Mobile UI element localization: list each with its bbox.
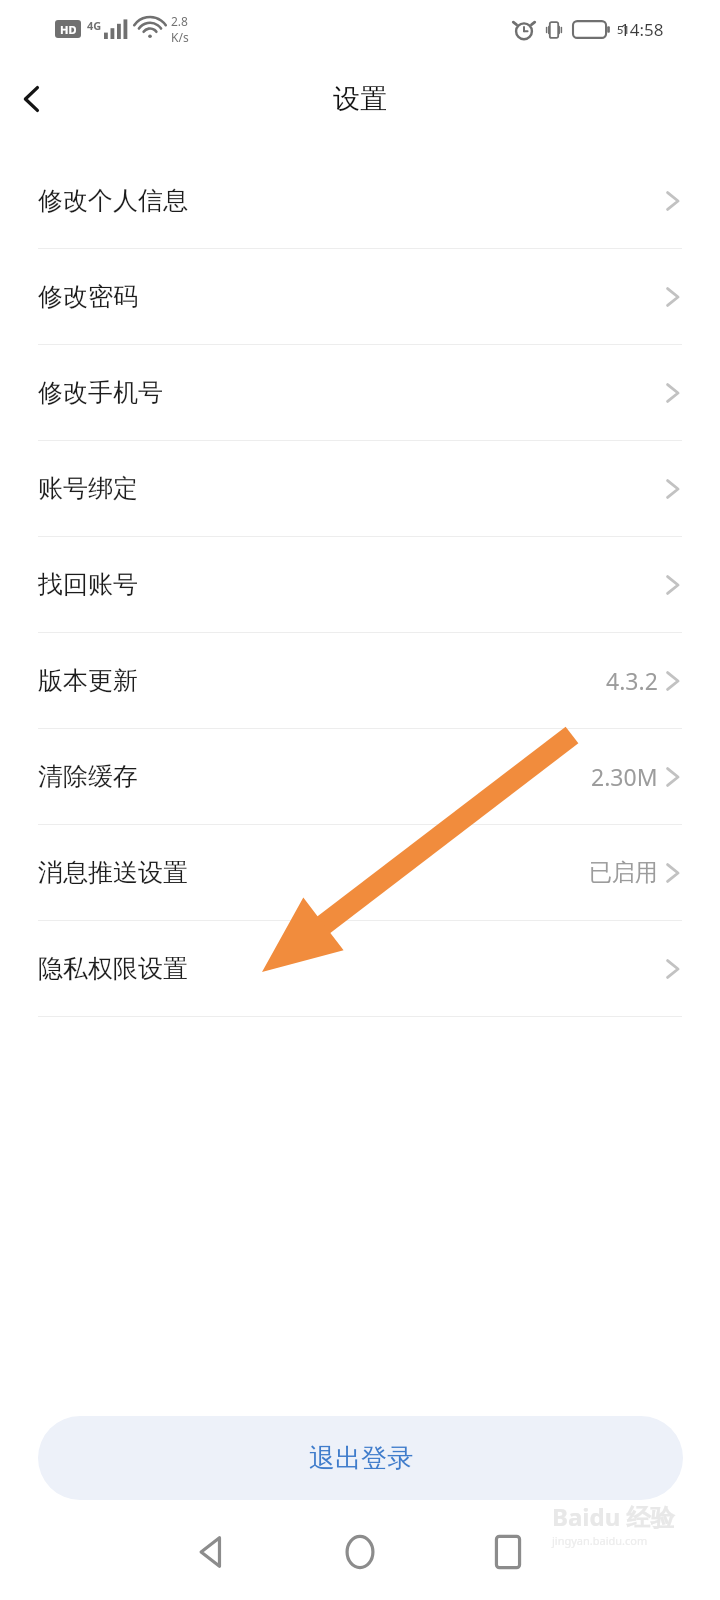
staticText: 51 bbox=[617, 22, 630, 37]
staticText: 退出登录 bbox=[309, 1442, 413, 1475]
staticText: 修改密码 bbox=[38, 281, 138, 312]
staticText: 修改手机号 bbox=[38, 377, 163, 408]
staticText: jingyan.baidu.com bbox=[552, 1533, 648, 1548]
button[interactable]: 消息推送设置 bbox=[0, 825, 720, 920]
button[interactable]: Back bbox=[138, 1504, 286, 1600]
staticText: 2.8 bbox=[171, 13, 188, 29]
staticText: 2.30M bbox=[591, 761, 658, 792]
button[interactable]: Back bbox=[0, 67, 64, 131]
staticText: 设置 bbox=[333, 82, 387, 116]
staticText: 找回账号 bbox=[38, 569, 138, 600]
button[interactable]: Home bbox=[286, 1504, 434, 1600]
staticText: 4G bbox=[87, 18, 102, 33]
staticText: 修改个人信息 bbox=[38, 185, 188, 216]
staticText: 4.3.2 bbox=[606, 665, 658, 696]
button[interactable]: 版本更新 bbox=[0, 633, 720, 728]
button[interactable]: 修改密码 bbox=[0, 249, 720, 344]
staticText: 清除缓存 bbox=[38, 761, 138, 792]
staticText: 隐私权限设置 bbox=[38, 953, 188, 984]
button[interactable]: 找回账号 bbox=[0, 537, 720, 632]
staticText: 14:58 bbox=[620, 18, 664, 41]
staticText: HD bbox=[60, 22, 77, 37]
staticText: K/s bbox=[171, 29, 189, 45]
button[interactable]: 隐私权限设置 bbox=[0, 921, 720, 1016]
button[interactable]: 修改个人信息 bbox=[0, 153, 720, 248]
staticText: 消息推送设置 bbox=[38, 857, 188, 888]
staticText: 已启用 bbox=[589, 858, 658, 887]
button[interactable]: 退出登录 bbox=[38, 1416, 683, 1500]
staticText: 账号绑定 bbox=[38, 473, 138, 504]
button[interactable]: 账号绑定 bbox=[0, 441, 720, 536]
staticText: Baidu 经验 bbox=[552, 1500, 675, 1533]
button[interactable]: 修改手机号 bbox=[0, 345, 720, 440]
staticText: 版本更新 bbox=[38, 665, 138, 696]
button[interactable]: Recents bbox=[434, 1504, 582, 1600]
button[interactable]: 清除缓存 bbox=[0, 729, 720, 824]
